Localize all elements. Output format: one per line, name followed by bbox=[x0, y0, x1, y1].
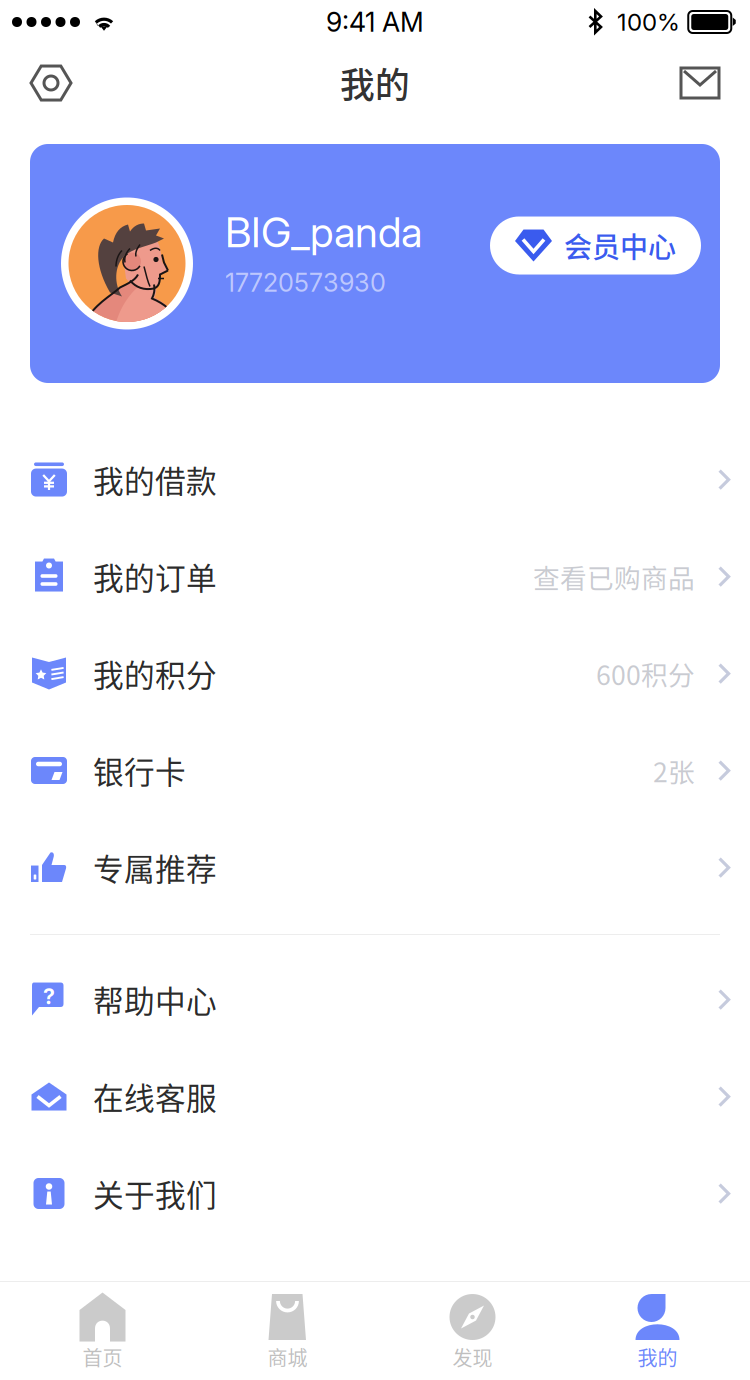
staticText: BIG_panda bbox=[225, 207, 422, 257]
staticText: 我的借款 bbox=[93, 457, 217, 502]
staticText: 专属推荐 bbox=[93, 845, 217, 890]
staticText: 2张 bbox=[653, 751, 695, 790]
staticText: 商城 bbox=[267, 1342, 307, 1371]
button[interactable]: 我的积分 bbox=[0, 625, 750, 722]
button[interactable]: 商城 bbox=[195, 1282, 380, 1380]
staticText: 会员中心 bbox=[564, 225, 676, 266]
staticText: 查看已购商品 bbox=[533, 557, 695, 596]
staticText: ? bbox=[43, 984, 55, 1009]
button[interactable]: 首页 bbox=[10, 1282, 195, 1380]
button[interactable]: 银行卡 bbox=[0, 722, 750, 819]
button[interactable]: 发现 bbox=[380, 1282, 565, 1380]
button[interactable]: ? bbox=[0, 951, 750, 1048]
staticText: 我的积分 bbox=[93, 651, 217, 696]
staticText: 我的订单 bbox=[93, 554, 217, 599]
staticText: 发现 bbox=[452, 1342, 492, 1371]
button[interactable]: 设置 bbox=[15, 45, 87, 121]
staticText: 17720573930 bbox=[225, 267, 386, 298]
staticText: 在线客服 bbox=[93, 1074, 217, 1119]
button[interactable]: 专属推荐 bbox=[0, 819, 750, 916]
staticText: 100% bbox=[617, 7, 680, 36]
staticText: 9:41 AM bbox=[326, 6, 424, 38]
staticText: 600积分 bbox=[596, 654, 695, 693]
button[interactable]: 我的 bbox=[565, 1282, 750, 1380]
button[interactable]: 我的借款 bbox=[0, 431, 750, 528]
staticText: 首页 bbox=[82, 1342, 122, 1371]
staticText: 关于我们 bbox=[93, 1171, 217, 1216]
button[interactable]: 消息 bbox=[664, 45, 736, 121]
staticText: 我的 bbox=[340, 58, 410, 108]
button[interactable]: 会员中心 bbox=[490, 216, 701, 274]
staticText: 银行卡 bbox=[93, 748, 186, 793]
button[interactable]: 在线客服 bbox=[0, 1048, 750, 1145]
staticText: 帮助中心 bbox=[93, 977, 217, 1022]
button[interactable]: 关于我们 bbox=[0, 1145, 750, 1242]
button[interactable]: 我的订单 bbox=[0, 528, 750, 625]
staticText: 我的 bbox=[637, 1342, 677, 1371]
